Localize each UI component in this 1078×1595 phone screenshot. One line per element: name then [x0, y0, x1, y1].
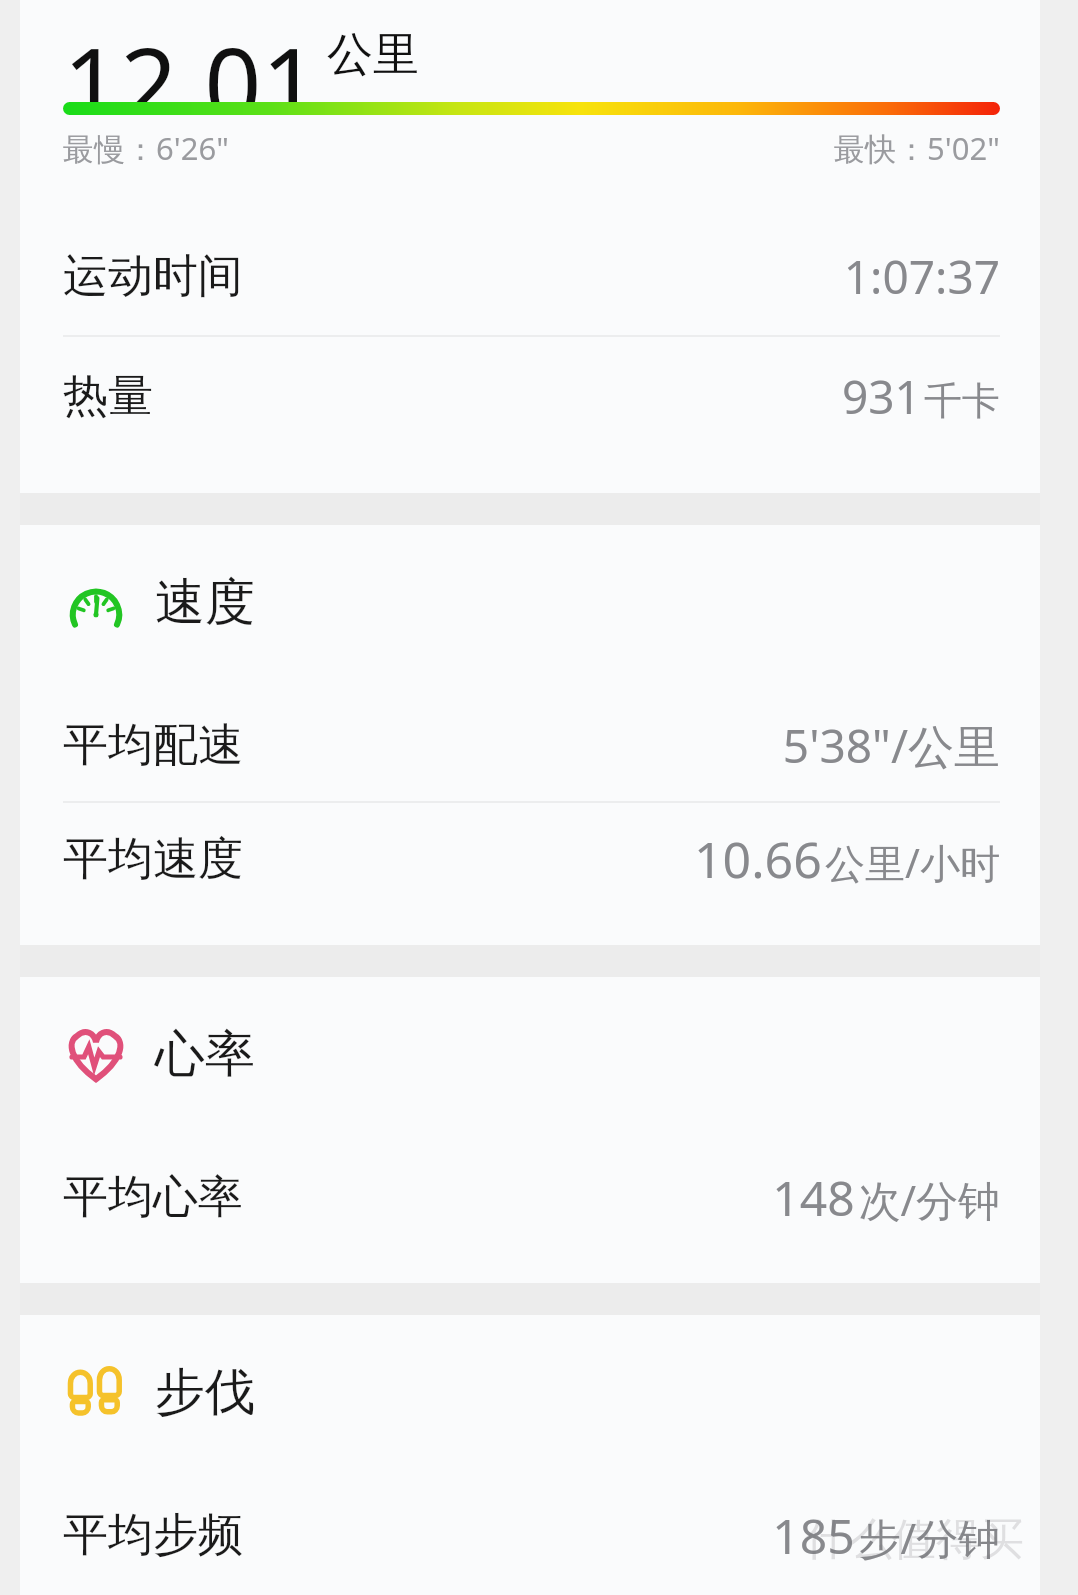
staticText: 什么值得买: [804, 1512, 1024, 1567]
staticText: 热量: [63, 368, 153, 425]
staticText: 平均步频: [63, 1507, 243, 1564]
button[interactable]: Speed: [20, 561, 1040, 643]
staticText: 平均心率: [63, 1169, 243, 1226]
button[interactable]: Heart rate: [20, 1013, 1040, 1095]
staticText: 运动时间: [63, 248, 243, 305]
staticText: 心率: [155, 1023, 255, 1086]
button[interactable]: Cadence: [20, 1351, 1040, 1433]
other: Cadence: [67, 1363, 125, 1421]
staticText: 速度: [155, 571, 255, 634]
staticText: 平均配速: [63, 717, 243, 774]
staticText: 931 千卡: [841, 365, 1000, 428]
staticText: 185 步/分钟: [772, 1503, 1000, 1568]
staticText: 步伐: [155, 1361, 255, 1424]
staticText: 平均速度: [63, 831, 243, 888]
staticText: 公里: [327, 26, 419, 84]
button[interactable]: 运动时间: [20, 217, 1040, 335]
staticText: 1:07:37: [843, 245, 1000, 308]
other: Heart rate: [66, 1024, 126, 1084]
staticText: 最快：5'02": [834, 127, 1000, 169]
button[interactable]: 平均配速: [20, 689, 1040, 801]
button[interactable]: 平均心率: [20, 1141, 1040, 1253]
button[interactable]: 平均速度: [20, 803, 1040, 915]
staticText: 10.66 公里/小时: [693, 825, 1000, 893]
other: Speed: [67, 573, 125, 631]
staticText: 5'38"/公里: [782, 714, 1000, 777]
staticText: 12.01: [63, 14, 319, 106]
button[interactable]: 平均步频: [20, 1479, 1040, 1591]
button[interactable]: 热量: [20, 337, 1040, 455]
staticText: 148 次/分钟: [772, 1165, 1000, 1230]
staticText: 最慢：6'26": [63, 127, 229, 169]
